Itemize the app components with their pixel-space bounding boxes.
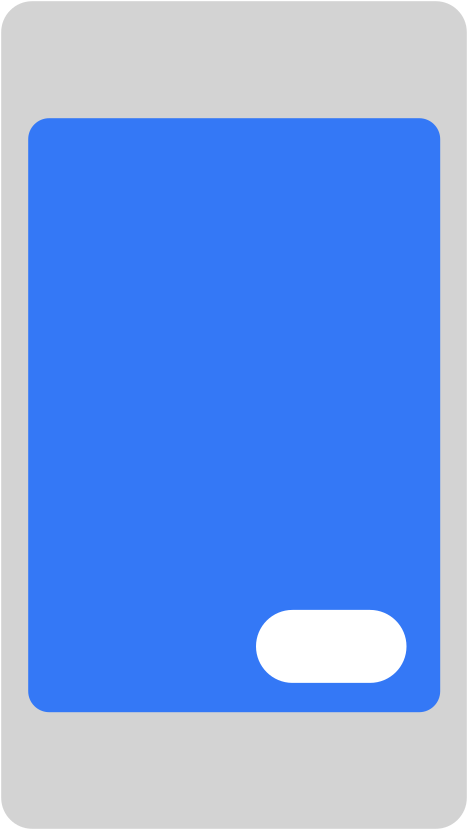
button[interactable]: Continue bbox=[256, 610, 406, 683]
